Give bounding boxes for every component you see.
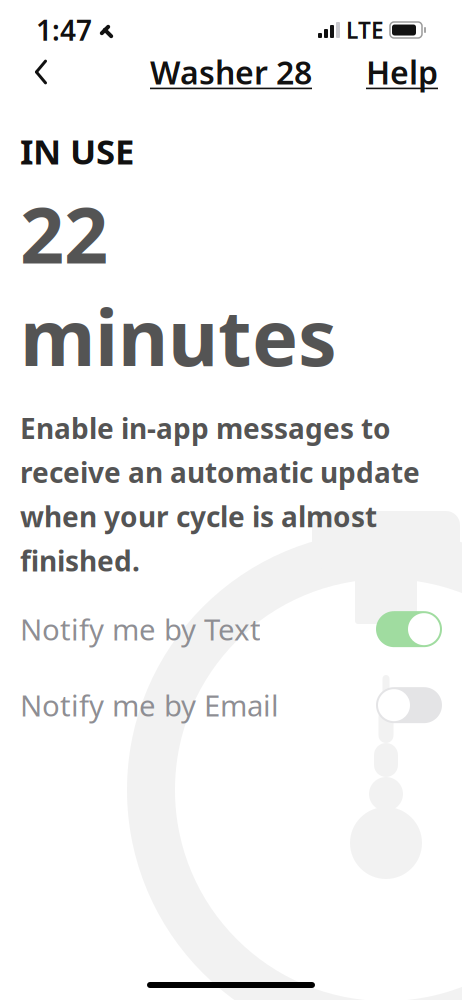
button[interactable]: Help [360,45,444,99]
staticText: IN USE [20,128,134,174]
button[interactable]: Notify me by Email [20,685,442,725]
button[interactable]: Washer 28 [142,45,320,99]
staticText: Notify me by Text [20,610,261,649]
staticText: 22 minutes [20,182,337,387]
staticText: Washer 28 [150,51,312,93]
button[interactable]: Notify me by Text [20,609,442,649]
staticText: 1:47 [36,11,92,49]
staticText: LTE [346,15,384,45]
button[interactable]: Back [18,49,64,95]
staticText: Enable in-app messages to receive an aut… [20,409,420,579]
staticText: Help [366,51,438,93]
staticText: Notify me by Email [20,686,279,725]
